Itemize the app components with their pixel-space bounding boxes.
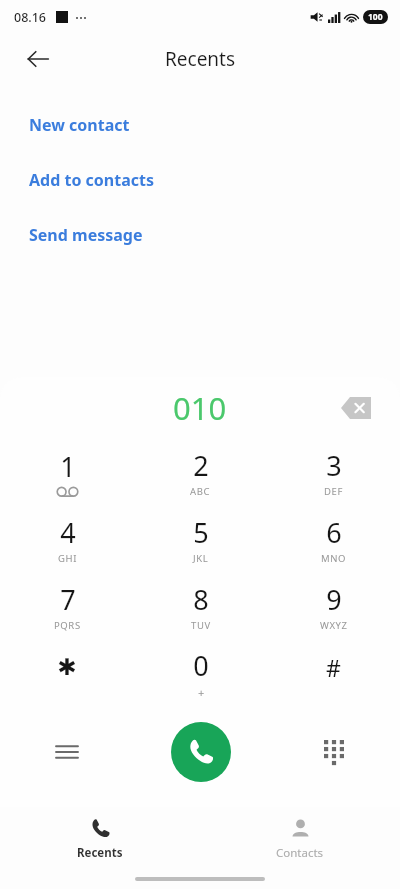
staticText: 3: [326, 447, 342, 484]
staticText: 5: [193, 514, 209, 551]
button[interactable]: Back: [14, 35, 62, 83]
button[interactable]: Call log options: [0, 707, 134, 797]
button[interactable]: ✱: [0, 640, 134, 707]
button[interactable]: 1: [0, 439, 134, 506]
staticText: DEF: [324, 485, 343, 498]
staticText: 1: [60, 448, 76, 485]
staticText: #: [326, 652, 341, 683]
button[interactable]: New contact: [0, 108, 400, 142]
button[interactable]: Contacts: [200, 805, 400, 889]
button[interactable]: Backspace: [334, 386, 378, 430]
staticText: PQRS: [54, 619, 81, 632]
staticText: +: [198, 685, 205, 700]
button[interactable]: 3: [267, 439, 400, 506]
button[interactable]: Add to contacts: [0, 163, 400, 197]
staticText: 9: [326, 581, 342, 618]
button[interactable]: Send message: [0, 218, 400, 252]
button[interactable]: 2: [134, 439, 267, 506]
staticText: TUV: [191, 619, 211, 632]
staticText: New contact: [29, 114, 130, 136]
staticText: 08.16: [14, 9, 47, 26]
staticText: Recents: [165, 46, 236, 72]
button[interactable]: 8: [134, 573, 267, 640]
button[interactable]: Recents: [0, 805, 200, 889]
staticText: MNO: [321, 552, 347, 565]
staticText: 4: [60, 514, 76, 551]
staticText: 0: [193, 647, 209, 684]
staticText: ABC: [190, 485, 211, 498]
button[interactable]: Call: [171, 722, 231, 782]
staticText: GHI: [58, 552, 77, 565]
button[interactable]: 7: [0, 573, 134, 640]
button[interactable]: 9: [267, 573, 400, 640]
button[interactable]: 6: [267, 506, 400, 573]
button[interactable]: 4: [0, 506, 134, 573]
staticText: 100: [368, 11, 383, 23]
staticText: 6: [326, 514, 342, 551]
button[interactable]: #: [267, 640, 400, 707]
button[interactable]: Keypad: [267, 707, 400, 797]
staticText: JKL: [193, 552, 209, 565]
staticText: Contacts: [276, 845, 324, 861]
staticText: 2: [193, 447, 209, 484]
staticText: WXYZ: [320, 619, 348, 632]
staticText: 010: [173, 387, 227, 429]
staticText: Recents: [77, 845, 123, 861]
staticText: ✱: [57, 654, 77, 681]
staticText: 7: [60, 581, 76, 618]
staticText: Add to contacts: [29, 169, 154, 191]
button[interactable]: 5: [134, 506, 267, 573]
staticText: Send message: [29, 224, 143, 246]
staticText: 8: [193, 581, 209, 618]
button[interactable]: 0: [134, 640, 267, 707]
